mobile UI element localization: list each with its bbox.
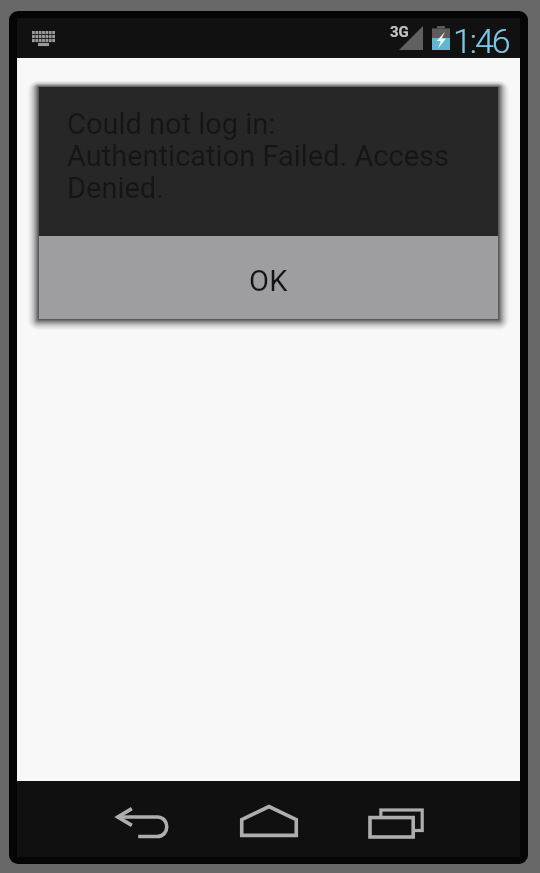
button[interactable]: Back	[78, 781, 205, 857]
staticText: 3G	[390, 23, 409, 41]
button[interactable]: Home	[205, 781, 332, 857]
button[interactable]: OK	[39, 236, 498, 319]
staticText: Could not log in: Authentication Failed.…	[67, 107, 488, 205]
button[interactable]: Recent apps	[332, 781, 459, 857]
staticText: 1:46	[453, 21, 509, 61]
staticText: OK	[249, 264, 288, 298]
